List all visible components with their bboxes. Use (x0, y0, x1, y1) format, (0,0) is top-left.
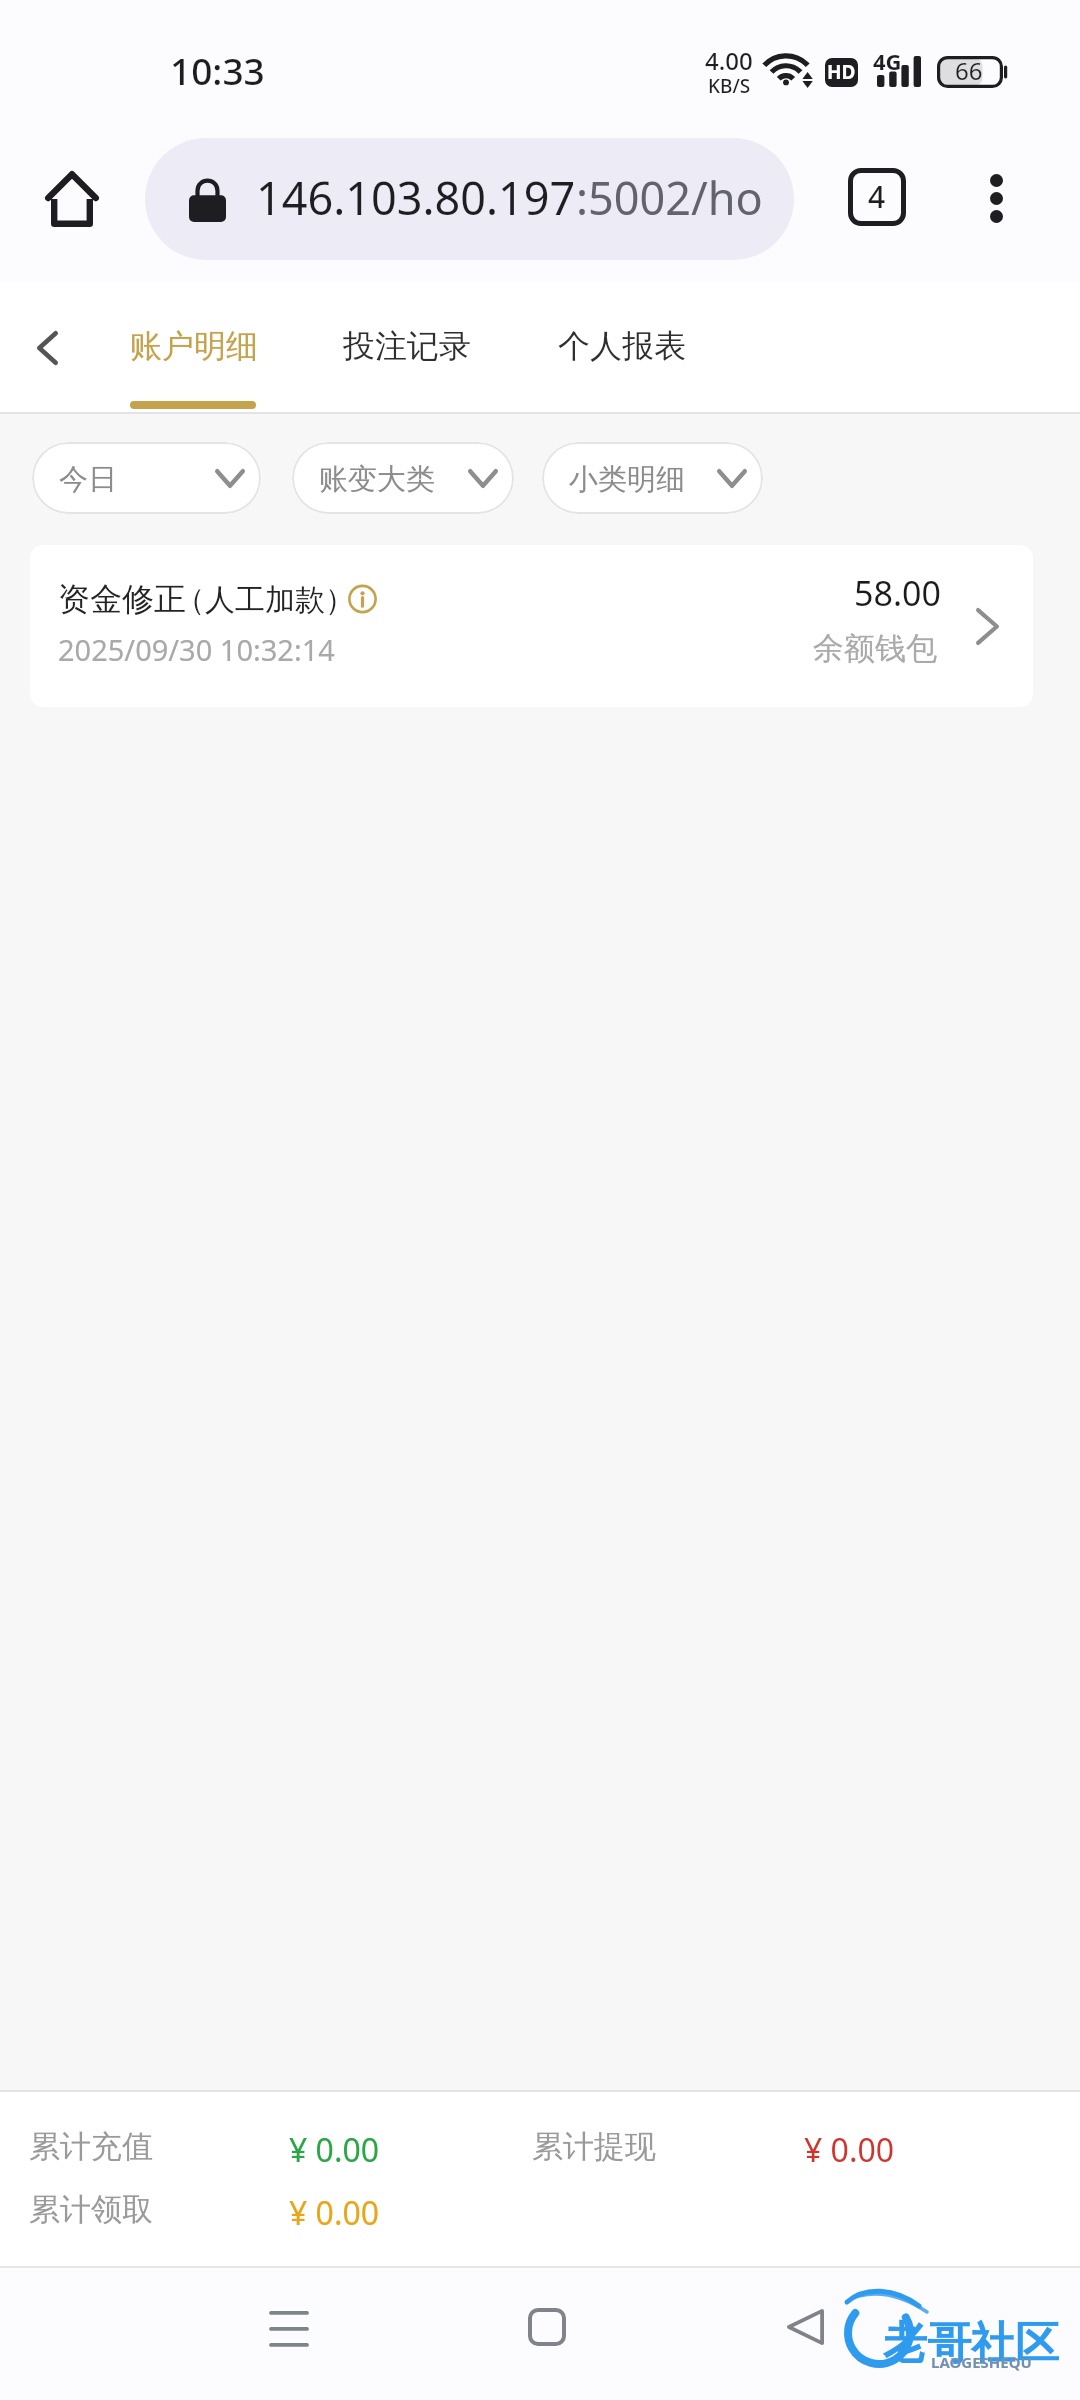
button[interactable]: Home (30, 157, 114, 241)
staticText: :5002/ho (576, 167, 763, 228)
button[interactable]: 小类明细 (542, 442, 763, 514)
staticText: KB/S (708, 73, 751, 99)
staticText: 累计领取 (29, 2190, 153, 2229)
button[interactable]: 资金修正 (30, 545, 1033, 707)
staticText: 个人报表 (558, 326, 686, 366)
staticText: ¥ 0.00 (289, 2191, 380, 2235)
button[interactable]: Back (2, 303, 92, 393)
staticText: 账户明细 (130, 326, 258, 366)
staticText: 2025/09/30 10:32:14 (58, 630, 335, 669)
staticText: 投注记录 (343, 326, 471, 366)
staticText: ¥ 0.00 (289, 2128, 380, 2172)
button[interactable]: Back (760, 2282, 850, 2372)
staticText: 4.00 (705, 44, 753, 77)
button[interactable]: 账变大类 (292, 442, 514, 514)
staticText: 小类明细 (569, 461, 685, 498)
button[interactable]: Tabs (838, 158, 916, 236)
button[interactable]: Recent apps (244, 2284, 334, 2374)
staticText: 累计充值 (29, 2127, 153, 2166)
other: Details (938, 577, 1033, 675)
staticText: （人工加款） (175, 581, 355, 619)
button[interactable]: 个人报表 (536, 282, 706, 412)
button[interactable]: 账户明细 (108, 282, 278, 412)
staticText: 账变大类 (319, 461, 435, 498)
staticText: 4 (868, 176, 886, 217)
button[interactable]: 146.103.80.197 (145, 138, 794, 260)
staticText: ¥ 0.00 (804, 2128, 895, 2172)
staticText: 累计提现 (532, 2127, 656, 2166)
staticText: 58.00 (854, 570, 941, 616)
staticText: 余额钱包 (813, 629, 937, 668)
staticText: 今日 (59, 461, 117, 498)
button[interactable]: More options (957, 159, 1035, 237)
staticText: 146.103.80.197 (256, 167, 576, 228)
staticText: 66 (955, 54, 983, 86)
staticText: LAOGESHEQU (931, 2352, 1032, 2372)
button[interactable]: Home (502, 2282, 592, 2372)
button[interactable]: 今日 (32, 442, 261, 514)
staticText: 10:33 (170, 45, 265, 95)
staticText: 资金修正 (58, 579, 186, 619)
button[interactable]: 投注记录 (321, 282, 491, 412)
staticText: 4G (873, 46, 902, 76)
staticText: HD (827, 59, 856, 85)
staticText: 老哥社区 (883, 2316, 1059, 2371)
